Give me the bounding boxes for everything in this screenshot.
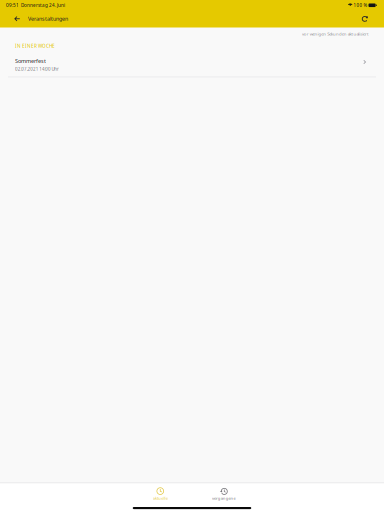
button[interactable]: Sommerfest <box>0 52 384 77</box>
staticText: 100 % <box>352 2 368 8</box>
staticText: Sommerfest <box>15 57 46 65</box>
staticText: Veranstaltungen <box>28 15 68 22</box>
button[interactable]: Aktualisieren <box>350 10 384 27</box>
staticText: 09:51 <box>6 2 19 8</box>
button[interactable]: vergangene <box>196 483 252 504</box>
staticText: Donnerstag 24. Juni <box>19 2 65 8</box>
staticText: vergangene <box>212 495 235 501</box>
button[interactable]: aktuelle <box>132 483 188 504</box>
staticText: vor wenigen Sekunden aktualisiert <box>302 31 369 37</box>
staticText: 02.07.2021 14:00 Uhr <box>15 66 59 72</box>
staticText: aktuelle <box>153 495 168 501</box>
button[interactable]: Veranstaltungen <box>0 10 78 27</box>
staticText: IN EINER WOCHE <box>15 43 55 49</box>
